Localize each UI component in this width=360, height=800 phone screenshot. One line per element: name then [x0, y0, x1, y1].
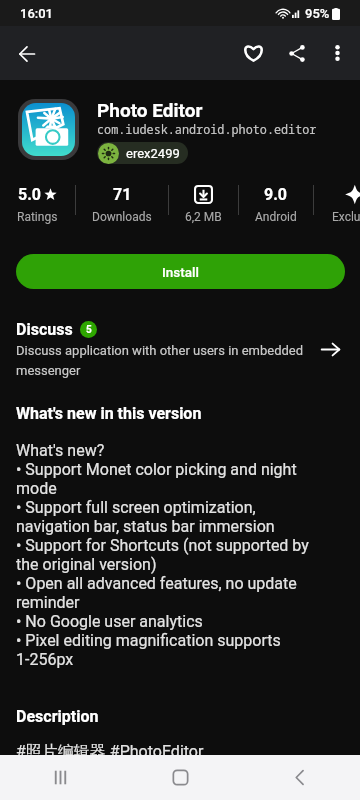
- button[interactable]: Back: [276, 755, 324, 800]
- staticText: erex2499: [126, 146, 180, 161]
- button[interactable]: Home: [156, 755, 204, 800]
- staticText: 16:01: [20, 6, 54, 21]
- staticText: Description: [16, 707, 99, 726]
- button[interactable]: Install: [16, 254, 345, 289]
- staticText: Exclusive: [332, 210, 360, 224]
- staticText: Discuss: [16, 320, 73, 339]
- staticText: 9.0: [264, 185, 288, 204]
- staticText: Android: [255, 210, 297, 224]
- staticText: #照片编辑器 #PhotoEditor: [16, 742, 204, 755]
- button[interactable]: erex2499: [97, 142, 188, 164]
- staticText: Install: [162, 264, 200, 280]
- staticText: 5: [86, 324, 92, 336]
- button[interactable]: 71: [76, 183, 168, 224]
- button[interactable]: Back: [6, 33, 47, 74]
- button[interactable]: More options: [319, 35, 355, 71]
- staticText: Ratings: [17, 210, 58, 224]
- staticText: What's new in this version: [16, 404, 202, 423]
- button[interactable]: 5.0: [0, 183, 75, 224]
- button[interactable]: 6,2 MB: [169, 183, 238, 224]
- staticText: Discuss application with other users in …: [16, 343, 312, 378]
- staticText: Photo Editor: [97, 99, 203, 121]
- button[interactable]: Recents: [36, 755, 84, 800]
- staticText: What's new? • Support Monet color pickin…: [16, 441, 332, 669]
- staticText: 6,2 MB: [185, 210, 222, 224]
- staticText: 5.0: [18, 185, 42, 204]
- button[interactable]: 9.0: [239, 183, 313, 224]
- staticText: com.iudesk.android.photo.editor: [97, 121, 317, 137]
- staticText: 95%: [305, 6, 330, 21]
- button[interactable]: Exclusive: [314, 183, 360, 224]
- staticText: Downloads: [92, 210, 152, 224]
- staticText: 71: [113, 185, 132, 204]
- button[interactable]: Share: [275, 31, 319, 75]
- button[interactable]: Favorite: [231, 31, 275, 75]
- button[interactable]: Discuss: [0, 320, 360, 378]
